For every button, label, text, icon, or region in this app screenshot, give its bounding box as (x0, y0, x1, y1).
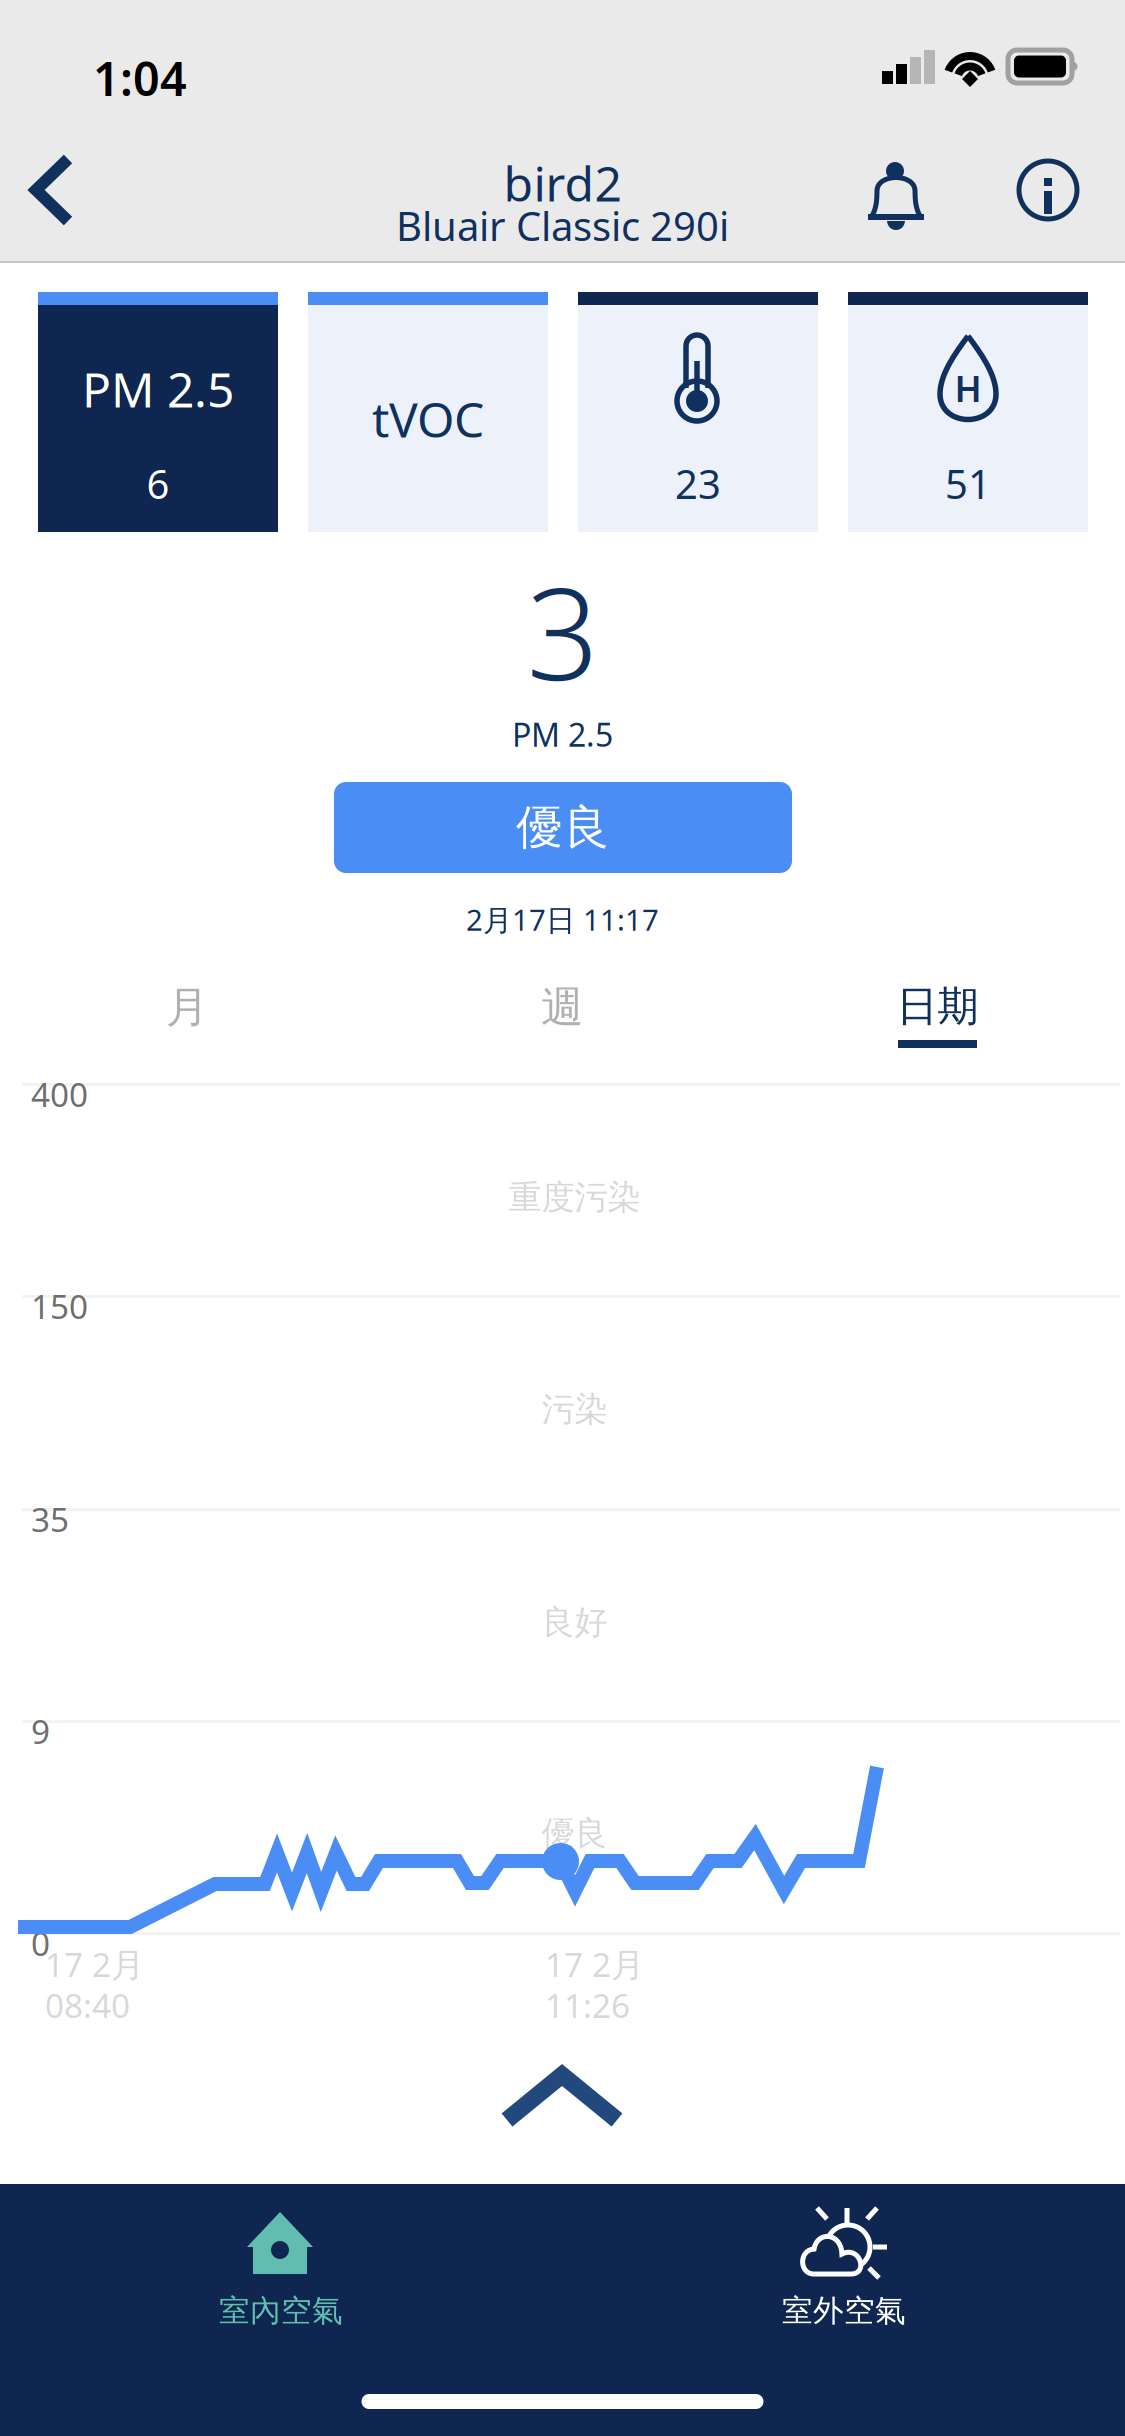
staticText: 11:26 (545, 1983, 630, 2027)
staticText: 優良 (516, 799, 610, 856)
staticText: 日期 (896, 981, 978, 1032)
button[interactable]: 優良 (334, 782, 792, 873)
staticText: 週 (541, 981, 584, 1033)
staticText: 室外空氣 (782, 2292, 906, 2330)
button[interactable]: 室內空氣 (0, 2184, 562, 2344)
staticText: PM 2.5 (512, 713, 613, 755)
staticText: tVOC (372, 387, 484, 451)
staticText: H (954, 364, 981, 412)
staticText: 150 (31, 1284, 88, 1328)
staticText: 400 (31, 1072, 88, 1116)
staticText: bird2 (503, 151, 621, 215)
staticText: 2月17日 11:17 (466, 900, 659, 939)
button[interactable]: Back (0, 134, 104, 246)
button[interactable]: 週 (375, 981, 750, 1081)
staticText: 9 (31, 1709, 50, 1753)
staticText: 重度污染 (508, 1177, 640, 1218)
staticText: 1:04 (93, 47, 187, 109)
staticText: 08:40 (45, 1983, 130, 2027)
button[interactable]: H (848, 292, 1088, 532)
staticText: 17 2月 (45, 1942, 144, 1986)
button[interactable]: 月 (0, 981, 375, 1081)
button[interactable]: PM 2.5 (38, 292, 278, 532)
button[interactable]: tVOC (308, 292, 548, 532)
staticText: Bluair Classic 290i (396, 199, 729, 252)
staticText: 23 (675, 457, 721, 510)
button[interactable]: Info (996, 134, 1100, 246)
staticText: PM 2.5 (82, 357, 234, 421)
staticText: 良好 (541, 1602, 607, 1643)
staticText: 6 (146, 457, 169, 510)
button[interactable]: Notifications (841, 141, 951, 253)
button[interactable]: 23 (578, 292, 818, 532)
staticText: 優良 (541, 1813, 607, 1854)
staticText: 51 (945, 457, 991, 510)
button[interactable]: Collapse chart (494, 2062, 630, 2134)
staticText: 室內空氣 (219, 2292, 343, 2330)
staticText: 月 (166, 981, 209, 1033)
button[interactable]: 室外空氣 (563, 2184, 1125, 2344)
staticText: 污染 (541, 1389, 607, 1430)
staticText: 17 2月 (545, 1942, 644, 1986)
staticText: 3 (526, 547, 598, 715)
staticText: 0 (31, 1921, 50, 1965)
staticText: 35 (31, 1497, 69, 1541)
button[interactable]: 日期 (750, 981, 1125, 1081)
